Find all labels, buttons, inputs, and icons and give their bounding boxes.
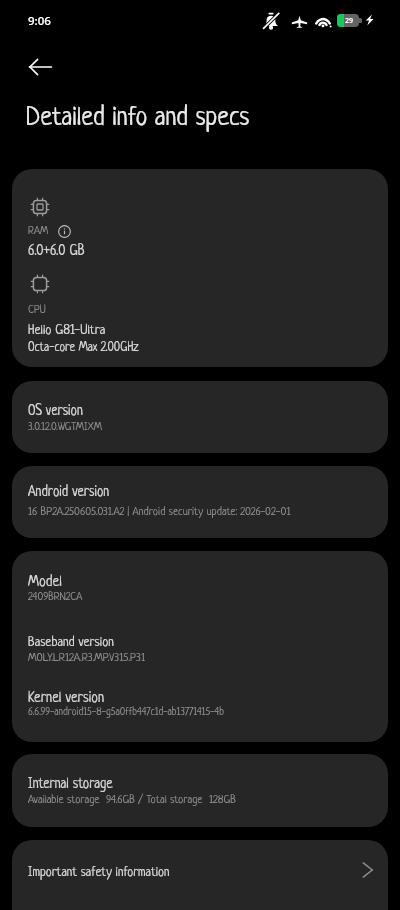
staticText: CPU [28,304,46,316]
button[interactable]: Important safety information [12,840,388,910]
button[interactable]: Back [18,45,62,89]
staticText: Baseband version [28,635,114,649]
staticText: 6.6.99-android15-8-g5a0ffb447c1d-ab13771… [28,707,224,718]
staticText: Important safety information [28,866,170,880]
staticText: 29 [345,16,354,26]
staticText: Octa-core Max 2.00GHz [28,341,139,354]
staticText: Kernel version [28,691,105,707]
staticText: MOLY.LR12A.R3.MP.V315.P31 [28,652,146,665]
staticText: 3.0.12.0.WGTMIXM [28,421,103,433]
staticText: 6.0+6.0 GB [28,244,85,259]
staticText: RAM [28,225,49,237]
staticText: Internal storage [28,777,113,792]
staticText: Android version [28,485,110,500]
staticText: Detailed info and specs [26,105,250,133]
staticText: Model [28,574,62,590]
staticText: Available storage 94.6GB / Total storage… [28,794,236,806]
staticText: 16 BP2A.250605.031.A2 | Android security… [28,506,291,518]
staticText: OS version [28,404,83,419]
staticText: 9:06 [28,13,51,29]
staticText: Helio G81-Ultra [28,323,106,338]
staticText: 2409BRN2CA [28,591,83,603]
